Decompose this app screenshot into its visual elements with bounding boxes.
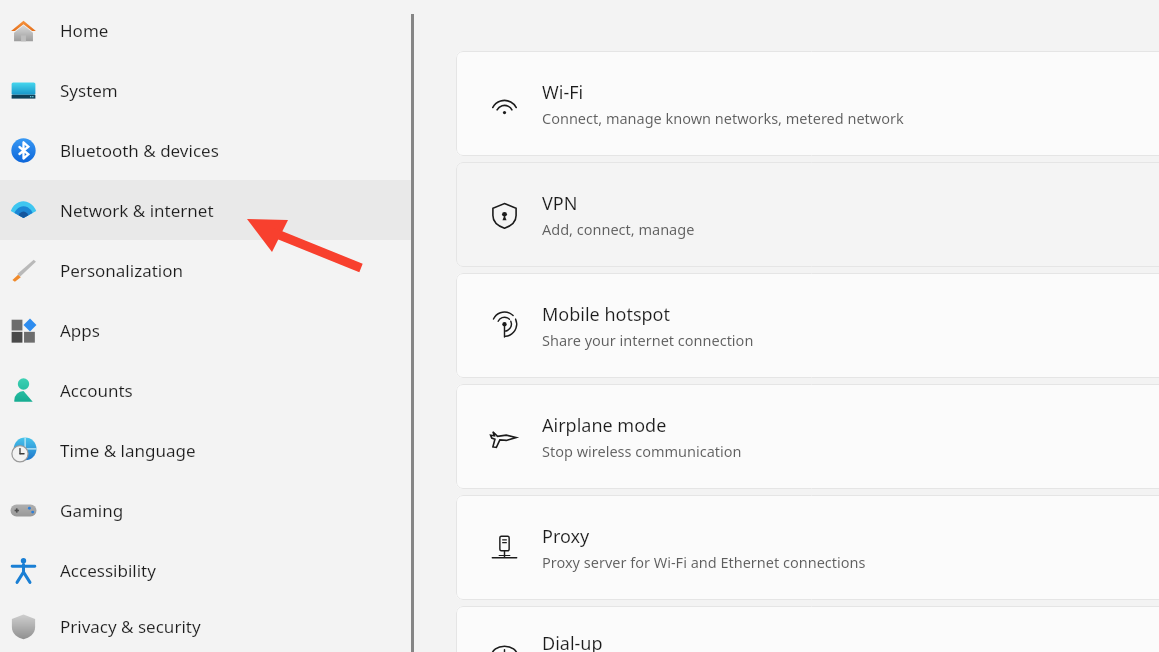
button[interactable]: System bbox=[0, 60, 412, 120]
staticText: Time & language bbox=[60, 439, 196, 462]
button[interactable]: Dial-up bbox=[456, 606, 1159, 652]
staticText: Proxy bbox=[542, 524, 590, 549]
staticText: Dial-up bbox=[542, 631, 603, 652]
staticText: Privacy & security bbox=[60, 615, 201, 638]
button[interactable]: Apps bbox=[0, 300, 412, 360]
staticText: Network & internet bbox=[60, 199, 214, 222]
button[interactable]: Wi-Fi bbox=[456, 51, 1159, 156]
staticText: Share your internet connection bbox=[542, 330, 754, 350]
staticText: Apps bbox=[60, 319, 100, 342]
button[interactable]: Accessibility bbox=[0, 540, 412, 600]
staticText: Add, connect, manage bbox=[542, 219, 695, 239]
button[interactable]: Airplane mode bbox=[456, 384, 1159, 489]
button[interactable]: Network & internet bbox=[0, 180, 412, 240]
button[interactable]: Home bbox=[0, 0, 412, 60]
button[interactable]: Time & language bbox=[0, 420, 412, 480]
button[interactable]: Privacy & security bbox=[0, 600, 412, 652]
staticText: System bbox=[60, 79, 118, 102]
button[interactable]: Mobile hotspot bbox=[456, 273, 1159, 378]
staticText: Mobile hotspot bbox=[542, 302, 670, 327]
button[interactable]: Personalization bbox=[0, 240, 412, 300]
button[interactable]: Accounts bbox=[0, 360, 412, 420]
button[interactable]: Gaming bbox=[0, 480, 412, 540]
staticText: Personalization bbox=[60, 259, 183, 282]
staticText: Connect, manage known networks, metered … bbox=[542, 108, 904, 128]
staticText: Home bbox=[60, 19, 109, 42]
button[interactable]: VPN bbox=[456, 162, 1159, 267]
staticText: Airplane mode bbox=[542, 413, 667, 438]
staticText: Wi-Fi bbox=[542, 80, 584, 105]
button[interactable]: Bluetooth & devices bbox=[0, 120, 412, 180]
button[interactable]: Proxy bbox=[456, 495, 1159, 600]
staticText: Bluetooth & devices bbox=[60, 139, 219, 162]
staticText: Accounts bbox=[60, 379, 133, 402]
staticText: VPN bbox=[542, 191, 578, 216]
staticText: Stop wireless communication bbox=[542, 441, 742, 461]
staticText: Proxy server for Wi-Fi and Ethernet conn… bbox=[542, 552, 866, 572]
staticText: Gaming bbox=[60, 499, 124, 522]
staticText: Accessibility bbox=[60, 559, 156, 582]
